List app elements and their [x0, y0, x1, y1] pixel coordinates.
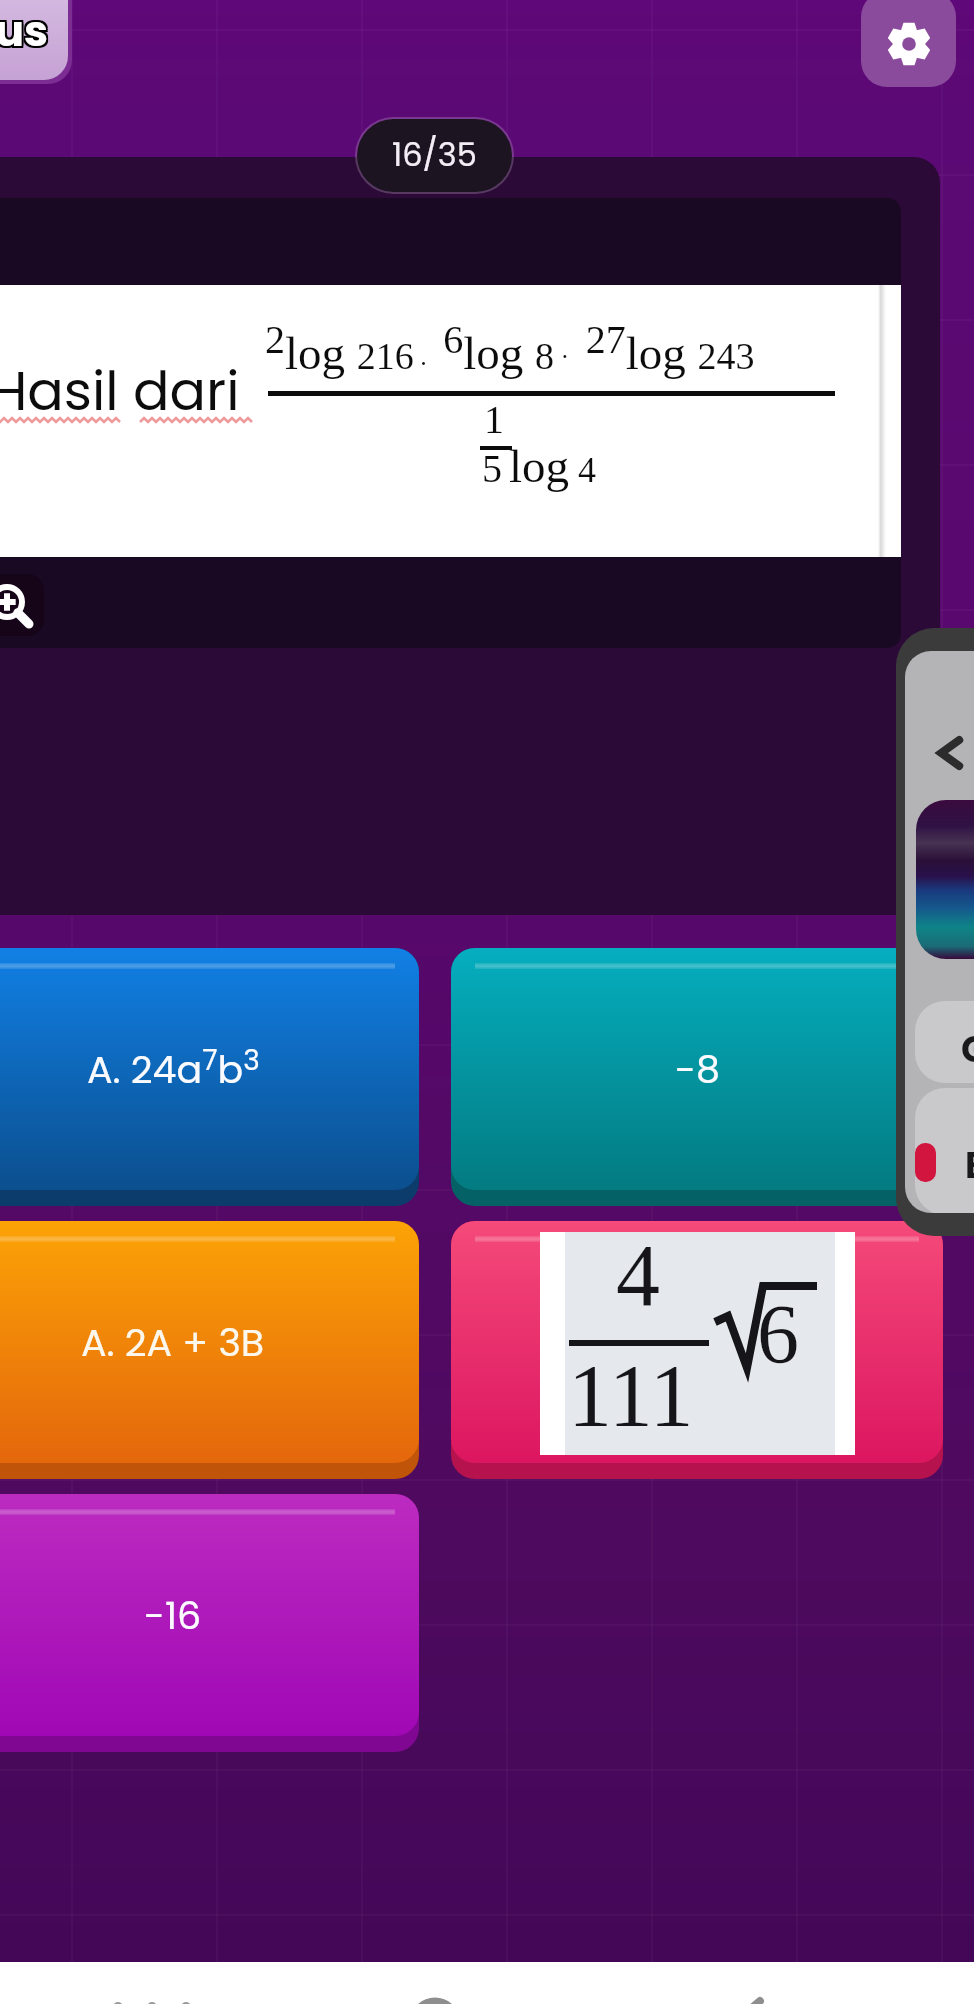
staticText: nus: [0, 0, 46, 59]
staticText: A. 24a7b3: [87, 1041, 260, 1097]
button[interactable]: Ga: [915, 1001, 974, 1083]
staticText: nus: [0, 0, 48, 59]
other: Recents: [113, 2002, 173, 2004]
button[interactable]: A. 24a7b3: [0, 948, 419, 1190]
staticText: 2log 216 . 6log 8 · 27log 243: [265, 317, 755, 380]
other: Back: [712, 2001, 784, 2004]
button[interactable]: -8: [451, 948, 943, 1190]
staticText: 1: [484, 397, 504, 441]
button[interactable]: A. 2A + 3B: [0, 1221, 419, 1463]
staticText: nus: [0, 3, 46, 63]
other: Home: [407, 2001, 463, 2004]
staticText: -8: [675, 1043, 720, 1096]
staticText: nus: [0, 3, 48, 63]
staticText: 4: [616, 1227, 660, 1324]
button[interactable]: 16/35: [357, 119, 512, 192]
staticText: A. 2A + 3B: [81, 1316, 265, 1369]
button[interactable]: 4: [451, 1221, 943, 1463]
button[interactable]: Settings: [861, 0, 956, 87]
staticText: 111: [568, 1347, 694, 1444]
other: Back: [939, 738, 961, 768]
staticText: -16: [144, 1589, 202, 1642]
staticText: Ga: [961, 1024, 974, 1074]
button[interactable]: nus: [0, 0, 68, 80]
staticText: log 4: [509, 440, 597, 492]
button[interactable]: -16: [0, 1494, 419, 1736]
button[interactable]: Back: [896, 628, 974, 1236]
staticText: nus: [0, 1, 46, 61]
staticText: nus: [0, 0, 50, 59]
staticText: Be: [965, 1140, 974, 1190]
staticText: 16/35: [392, 132, 477, 177]
staticText: nus: [0, 3, 50, 63]
staticText: 5: [482, 446, 502, 490]
staticText: nus: [0, 1, 48, 61]
staticText: 6: [757, 1288, 799, 1374]
button[interactable]: Zoom in: [0, 574, 44, 636]
staticText: nus: [0, 1, 50, 61]
staticText: Hasil dari: [0, 353, 240, 429]
button[interactable]: Be: [915, 1088, 974, 1213]
